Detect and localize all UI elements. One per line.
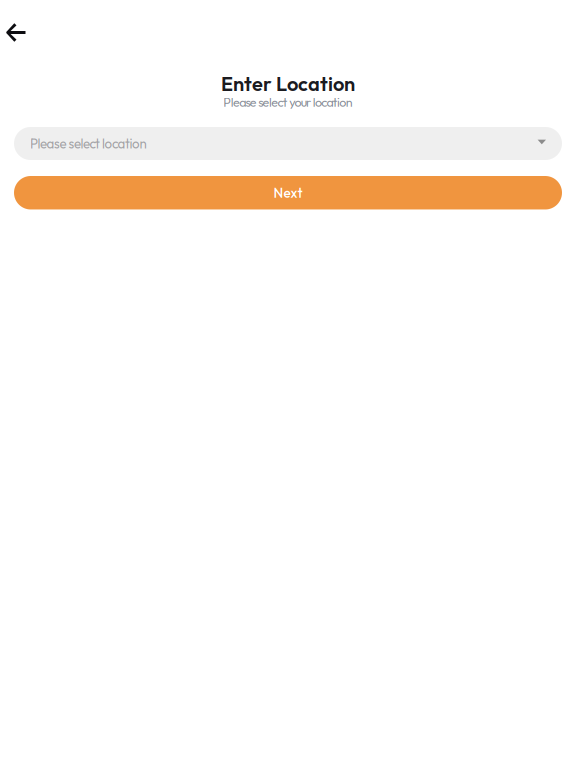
- button[interactable]: Please select location: [14, 127, 562, 160]
- button[interactable]: Back: [0, 14, 38, 51]
- staticText: Please select your location: [223, 94, 353, 110]
- staticText: Enter Location: [221, 71, 355, 96]
- button[interactable]: Next: [14, 176, 562, 209]
- staticText: Please select location: [30, 135, 146, 152]
- staticText: Next: [273, 184, 302, 201]
